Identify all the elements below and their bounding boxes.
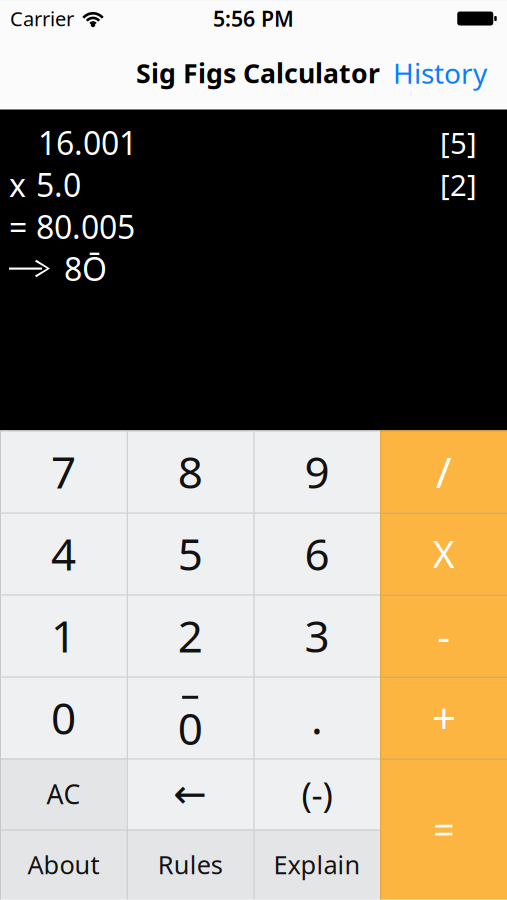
button[interactable]: Explain bbox=[253, 829, 380, 899]
staticText: x bbox=[9, 163, 26, 206]
button[interactable]: 8 bbox=[127, 430, 254, 512]
staticText: Sig Figs Calculator bbox=[136, 55, 380, 91]
staticText: 8 bbox=[178, 442, 203, 501]
button[interactable]: 6 bbox=[253, 512, 380, 594]
staticText: 9 bbox=[304, 442, 329, 501]
staticText: 8Ō bbox=[64, 247, 107, 290]
button[interactable]: ← bbox=[127, 758, 254, 829]
staticText: 6 bbox=[304, 524, 329, 583]
staticText: 1 bbox=[51, 606, 76, 665]
staticText: 7 bbox=[51, 442, 76, 501]
staticText: + bbox=[432, 689, 456, 746]
staticText: 5.0 bbox=[36, 163, 81, 206]
button[interactable]: (-) bbox=[253, 758, 380, 829]
staticText: 16.001 bbox=[38, 121, 137, 164]
button[interactable]: History bbox=[384, 46, 496, 100]
staticText: 0 bbox=[51, 688, 76, 747]
staticText: [5] bbox=[440, 123, 477, 162]
staticText: 2 bbox=[178, 606, 203, 665]
staticText: About bbox=[27, 848, 99, 881]
button[interactable]: / bbox=[380, 430, 507, 512]
button[interactable]: 7 bbox=[0, 430, 127, 512]
button[interactable]: - bbox=[380, 594, 507, 676]
button[interactable]: = bbox=[380, 758, 507, 899]
button[interactable]: 0 bbox=[0, 676, 127, 758]
button[interactable]: 5 bbox=[127, 512, 254, 594]
staticText: 5 bbox=[178, 524, 203, 583]
staticText: = bbox=[9, 205, 27, 248]
button[interactable]: 3 bbox=[253, 594, 380, 676]
button[interactable]: X bbox=[380, 512, 507, 594]
staticText: Carrier bbox=[10, 5, 74, 32]
button[interactable]: 1 bbox=[0, 594, 127, 676]
staticText: X bbox=[433, 529, 455, 578]
staticText: 5:56 PM bbox=[213, 4, 294, 33]
staticText: 3 bbox=[304, 606, 329, 665]
button[interactable]: 4 bbox=[0, 512, 127, 594]
staticText: ← bbox=[173, 771, 207, 817]
button[interactable]: . bbox=[253, 676, 380, 758]
staticText: History bbox=[393, 54, 487, 92]
staticText: AC bbox=[46, 776, 80, 812]
staticText: / bbox=[436, 443, 452, 500]
button[interactable]: 9 bbox=[253, 430, 380, 512]
staticText: - bbox=[437, 609, 450, 662]
staticText: Explain bbox=[273, 848, 360, 881]
button[interactable]: 2 bbox=[127, 594, 254, 676]
staticText: 80.005 bbox=[36, 205, 135, 248]
staticText: . bbox=[311, 688, 323, 747]
staticText: 0 bbox=[178, 699, 203, 757]
button[interactable]: About bbox=[0, 829, 127, 899]
button[interactable]: 0 bbox=[127, 676, 254, 758]
staticText: (-) bbox=[301, 771, 332, 817]
staticText: 4 bbox=[51, 524, 76, 583]
button[interactable]: Rules bbox=[127, 829, 254, 899]
staticText: Rules bbox=[158, 848, 223, 881]
staticText: [2] bbox=[440, 165, 477, 204]
button[interactable]: AC bbox=[0, 758, 127, 829]
button[interactable]: + bbox=[380, 676, 507, 758]
staticText: = bbox=[433, 804, 454, 854]
